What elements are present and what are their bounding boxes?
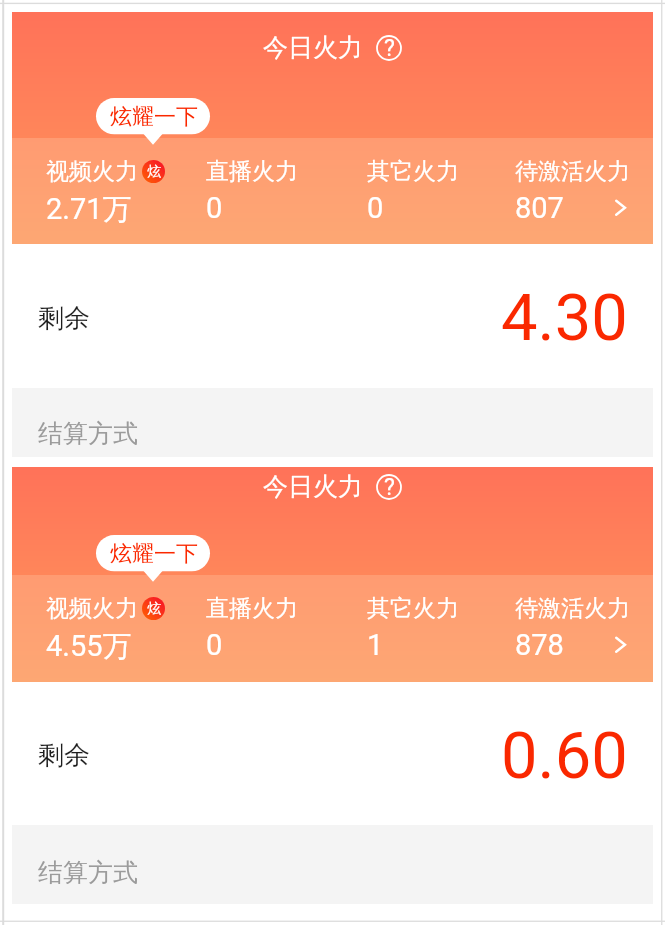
button[interactable]: 剩余: [12, 244, 653, 388]
button[interactable]: 查看待激活火力: [598, 186, 634, 222]
staticText: 878: [515, 628, 564, 662]
staticText: 炫耀一下: [110, 103, 198, 131]
button[interactable]: 结算方式: [12, 825, 653, 904]
staticText: 807: [515, 191, 564, 225]
staticText: 1: [367, 628, 384, 662]
button[interactable]: 视频火力: [46, 594, 165, 665]
staticText: 炫: [147, 163, 161, 181]
staticText: 直播火力: [206, 594, 298, 623]
button[interactable]: 剩余: [12, 682, 653, 825]
button[interactable]: 待激活火力: [515, 157, 630, 225]
staticText: 视频火力: [46, 594, 138, 623]
button[interactable]: 其它火力: [367, 157, 459, 225]
button[interactable]: 帮助说明: [376, 35, 402, 61]
staticText: ?: [384, 35, 395, 61]
button[interactable]: 查看待激活火力: [598, 623, 634, 659]
staticText: 0: [206, 628, 223, 662]
button[interactable]: 直播火力: [206, 594, 298, 662]
staticText: 视频火力: [46, 157, 138, 186]
staticText: 0: [367, 191, 384, 225]
button[interactable]: 其它火力: [367, 594, 459, 662]
staticText: 结算方式: [38, 418, 138, 449]
staticText: 0: [206, 191, 223, 225]
staticText: 待激活火力: [515, 157, 630, 186]
staticText: 结算方式: [38, 857, 138, 888]
button[interactable]: 炫耀一下: [96, 98, 210, 145]
staticText: ?: [384, 474, 395, 500]
staticText: 剩余: [38, 302, 90, 335]
staticText: 4.30: [501, 280, 628, 356]
staticText: 2.71万: [46, 191, 132, 228]
staticText: 其它火力: [367, 594, 459, 623]
button[interactable]: 待激活火力: [515, 594, 630, 662]
button[interactable]: 结算方式: [12, 388, 653, 457]
staticText: 今日火力: [263, 32, 363, 63]
button[interactable]: 视频火力: [46, 157, 165, 228]
staticText: 炫耀一下: [110, 540, 198, 568]
staticText: 炫: [147, 600, 161, 618]
staticText: 今日火力: [263, 471, 363, 502]
button[interactable]: 帮助说明: [376, 474, 402, 500]
staticText: 待激活火力: [515, 594, 630, 623]
staticText: 4.55万: [46, 628, 132, 665]
button[interactable]: 直播火力: [206, 157, 298, 225]
staticText: 0.60: [501, 718, 628, 794]
staticText: 剩余: [38, 739, 90, 772]
button[interactable]: 炫耀一下: [96, 535, 210, 582]
staticText: 其它火力: [367, 157, 459, 186]
staticText: 直播火力: [206, 157, 298, 186]
